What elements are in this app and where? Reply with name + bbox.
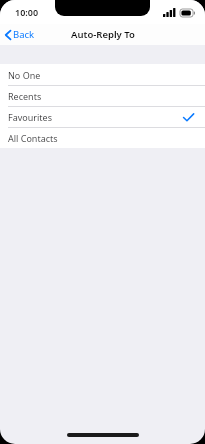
button[interactable]: Recents bbox=[0, 86, 205, 106]
button[interactable]: No One bbox=[0, 64, 205, 85]
staticText: No One bbox=[8, 69, 41, 81]
staticText: All Contacts bbox=[8, 132, 58, 144]
other: Selected bbox=[183, 113, 194, 122]
button[interactable]: Favourites bbox=[0, 107, 205, 127]
button[interactable]: Back bbox=[0, 24, 41, 45]
staticText: 10:00 bbox=[15, 6, 39, 18]
staticText: Auto-Reply To bbox=[71, 28, 135, 41]
staticText: Back bbox=[13, 28, 35, 41]
staticText: Favourites bbox=[8, 111, 52, 123]
staticText: Recents bbox=[8, 90, 42, 102]
button[interactable]: All Contacts bbox=[0, 128, 205, 148]
